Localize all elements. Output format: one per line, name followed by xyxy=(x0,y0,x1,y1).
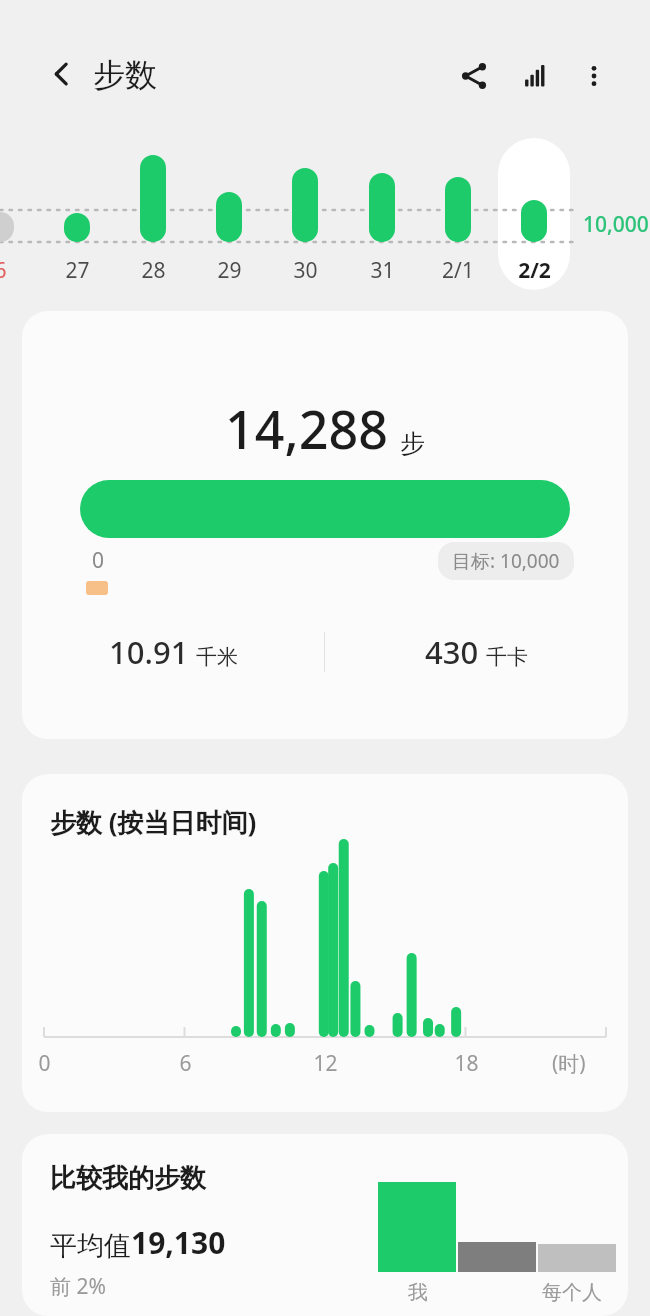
button[interactable]: Back xyxy=(38,50,86,98)
button[interactable]: Share xyxy=(450,52,498,100)
staticText: 12 xyxy=(313,1049,338,1078)
staticText: 10.91 xyxy=(109,631,189,673)
button[interactable]: 2/1 xyxy=(424,256,492,285)
staticText: 30 xyxy=(293,256,318,285)
staticText: 每个人 xyxy=(542,1280,602,1305)
staticText: 14,288 xyxy=(225,393,388,464)
staticText: 10,000 xyxy=(583,210,649,239)
staticText: 2/2 xyxy=(518,256,551,285)
staticText: 28 xyxy=(141,256,166,285)
staticText: 2/1 xyxy=(442,256,474,285)
button[interactable]: 2/2 xyxy=(500,256,568,285)
staticText: 千米 xyxy=(196,644,238,670)
button[interactable]: 27 xyxy=(43,256,111,285)
staticText: 19,130 xyxy=(131,1222,226,1263)
button[interactable]: 28 xyxy=(119,256,187,285)
staticText: 前 2% xyxy=(50,1272,106,1301)
button[interactable]: 6 xyxy=(0,256,34,285)
staticText: 我 xyxy=(408,1280,428,1305)
staticText: 29 xyxy=(217,256,242,285)
staticText: 0 xyxy=(92,546,105,575)
button[interactable]: 14,288 xyxy=(22,311,628,739)
button[interactable]: Chart xyxy=(512,52,560,100)
staticText: 比较我的步数 xyxy=(50,1162,206,1195)
staticText: 18 xyxy=(454,1049,479,1078)
staticText: 6 xyxy=(0,256,7,285)
staticText: 千卡 xyxy=(486,644,528,670)
staticText: 步数 xyxy=(93,55,157,95)
button[interactable]: 比较我的步数 xyxy=(22,1134,628,1316)
staticText: 步数 (按当日时间) xyxy=(50,804,257,840)
button[interactable]: 29 xyxy=(195,256,263,285)
staticText: 27 xyxy=(65,256,90,285)
button[interactable]: 31 xyxy=(348,256,416,285)
button[interactable]: 30 xyxy=(271,256,339,285)
staticText: 步 xyxy=(400,428,425,459)
staticText: 6 xyxy=(179,1049,192,1078)
button[interactable]: More options xyxy=(570,52,618,100)
staticText: 0 xyxy=(38,1049,51,1078)
staticText: 平均值 xyxy=(50,1229,131,1263)
staticText: (时) xyxy=(552,1049,586,1078)
staticText: 31 xyxy=(370,256,395,285)
staticText: 430 xyxy=(425,631,479,673)
button[interactable]: 步数 (按当日时间) xyxy=(22,774,628,1112)
staticText: 目标: 10,000 xyxy=(452,548,560,574)
